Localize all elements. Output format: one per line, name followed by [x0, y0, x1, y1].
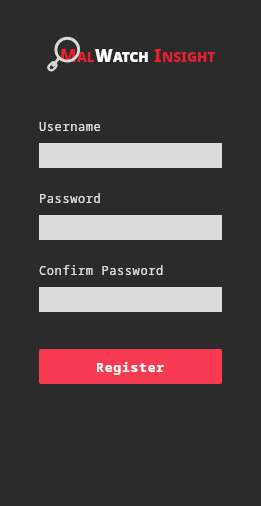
button[interactable]: Register — [39, 349, 222, 384]
staticText: Username — [39, 118, 102, 134]
staticText: NSIGHT — [162, 48, 216, 66]
staticText: Register — [96, 358, 165, 376]
staticText: I — [154, 44, 162, 67]
staticText: Confirm Password — [39, 262, 164, 278]
staticText: M — [60, 44, 77, 67]
staticText: AL — [77, 48, 95, 66]
staticText: ATCH — [113, 48, 149, 66]
staticText: W — [95, 44, 113, 67]
staticText: Password — [39, 190, 102, 206]
